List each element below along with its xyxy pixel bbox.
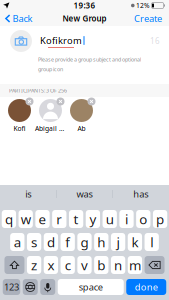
button[interactable]: Add group icon [10, 30, 32, 52]
staticText: b [97, 256, 105, 274]
button[interactable]: e [35, 210, 50, 228]
button[interactable]: m [128, 256, 142, 274]
button[interactable]: b [94, 256, 108, 274]
button[interactable]: l [145, 233, 159, 251]
button[interactable]: Back [0, 11, 36, 26]
staticText: space [79, 281, 103, 293]
button[interactable]: u [102, 210, 117, 228]
staticText: z [31, 256, 37, 274]
button[interactable]: Dictation [40, 279, 55, 295]
button[interactable]: o [136, 210, 150, 228]
button[interactable]: Next keyboard [23, 279, 38, 295]
button[interactable]: a [10, 233, 24, 251]
button[interactable]: n [111, 256, 125, 274]
staticText: t [74, 210, 79, 228]
staticText: q [5, 210, 13, 228]
button[interactable]: space [58, 279, 124, 295]
button[interactable]: k [128, 233, 142, 251]
staticText: was [76, 188, 92, 200]
staticText: 12% [136, 1, 150, 10]
staticText: is [25, 188, 31, 200]
staticText: s [31, 233, 37, 251]
staticText: y [89, 210, 96, 228]
staticText: j [117, 233, 120, 251]
button[interactable]: t [69, 210, 83, 228]
staticText: v [81, 256, 88, 274]
button[interactable]: 123 [3, 279, 20, 295]
button[interactable]: x [44, 256, 58, 274]
staticText: f [65, 233, 70, 251]
button[interactable]: was [57, 185, 112, 203]
staticText: Kofi [13, 124, 25, 133]
button[interactable]: z [27, 256, 41, 274]
button[interactable]: g [77, 233, 92, 251]
button[interactable]: Kofikrom [32, 34, 84, 48]
button[interactable]: y [86, 210, 100, 228]
button[interactable]: has [113, 185, 168, 203]
staticText: x [47, 256, 54, 274]
staticText: g [80, 233, 88, 251]
staticText: New Group [62, 13, 106, 24]
button[interactable]: s [27, 233, 41, 251]
staticText: e [38, 210, 46, 228]
staticText: 123 [4, 281, 19, 293]
staticText: o [139, 210, 147, 228]
staticText: Kofikrom [40, 34, 82, 46]
button[interactable]: Abigail As... [35, 99, 66, 133]
staticText: 16 [150, 36, 160, 46]
staticText: Abigail As... [35, 124, 66, 133]
staticText: r [56, 210, 62, 228]
staticText: PARTICIPANTS: 3 OF 256 [9, 87, 67, 94]
button[interactable]: r [52, 210, 66, 228]
button[interactable]: q [2, 210, 16, 228]
staticText: k [131, 233, 138, 251]
staticText: has [133, 188, 148, 200]
staticText: Please provide a group subject and optio… [38, 56, 141, 63]
button[interactable]: p [153, 210, 167, 228]
staticText: Create [134, 12, 162, 25]
staticText: Ab [77, 124, 85, 133]
button[interactable]: d [44, 233, 58, 251]
button[interactable]: Shift [4, 256, 24, 274]
staticText: i [125, 210, 128, 228]
staticText: u [106, 210, 114, 228]
staticText: l [150, 233, 153, 251]
staticText: a [14, 233, 21, 251]
staticText: Back [12, 12, 32, 25]
button[interactable]: i [119, 210, 134, 228]
button[interactable]: v [77, 256, 92, 274]
button[interactable]: h [94, 233, 108, 251]
staticText: done [135, 281, 158, 293]
staticText: d [47, 233, 55, 251]
button[interactable]: Create [130, 11, 169, 26]
staticText: c [65, 256, 71, 274]
staticText: 19:36 [73, 0, 95, 11]
button[interactable]: j [111, 233, 125, 251]
button[interactable]: w [19, 210, 33, 228]
button[interactable]: Delete [145, 256, 165, 274]
staticText: n [114, 256, 122, 274]
staticText: group icon [38, 66, 63, 73]
staticText: h [97, 233, 105, 251]
staticText: p [156, 210, 164, 228]
button[interactable]: Ab [66, 99, 97, 133]
button[interactable]: f [61, 233, 75, 251]
button[interactable]: done [126, 279, 166, 295]
button[interactable]: Kofi [4, 99, 35, 133]
button[interactable]: is [0, 185, 56, 203]
button[interactable]: c [61, 256, 75, 274]
staticText: w [21, 210, 31, 228]
staticText: m [129, 256, 141, 274]
